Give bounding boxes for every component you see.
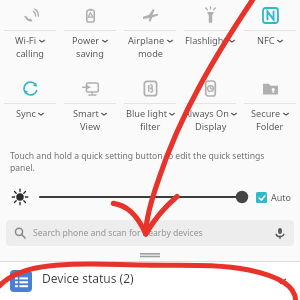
staticText: Sync [16, 107, 36, 120]
button[interactable]: Device status (2) [10, 270, 288, 292]
button[interactable]: Blue light [120, 104, 180, 138]
button[interactable]: Wi-Fi [0, 31, 60, 65]
staticText: filter [140, 120, 161, 133]
button[interactable]: Auto [256, 191, 292, 203]
button[interactable]: Airplane [120, 31, 180, 65]
button[interactable]: Secure [240, 104, 300, 138]
staticText: Folder [256, 120, 284, 133]
staticText: NFC [257, 34, 275, 47]
staticText: View [80, 120, 101, 133]
button[interactable]: Brightness slider [38, 186, 250, 208]
staticText: Touch and hold a quick setting button to… [10, 150, 286, 174]
button[interactable]: Blue light filter [120, 73, 180, 103]
button[interactable]: Brightness [10, 187, 30, 207]
staticText: Flashlight [185, 34, 227, 47]
button[interactable]: Sync [0, 104, 60, 138]
button[interactable]: Secure Folder [240, 73, 300, 103]
button[interactable]: Always On Display [180, 73, 240, 103]
button[interactable]: Airplane mode [120, 0, 180, 30]
staticText: saving [76, 47, 104, 60]
button[interactable]: Search phone and scan for nearby devices [6, 220, 294, 246]
staticText: Secure [251, 107, 281, 120]
staticText: Smart [73, 107, 99, 120]
button[interactable]: NFC [240, 31, 300, 65]
staticText: Search phone and scan for nearby devices [33, 227, 203, 239]
staticText: Blue light [126, 107, 167, 120]
staticText: calling [16, 47, 45, 60]
button[interactable]: Smart [60, 104, 120, 138]
button[interactable]: Always On [180, 104, 240, 138]
staticText: mode [138, 47, 163, 60]
button[interactable]: Flashlight [180, 0, 240, 30]
button[interactable]: Power [60, 31, 120, 65]
button[interactable]: Sync [0, 73, 60, 103]
staticText: Always On [184, 107, 229, 120]
staticText: Wi-Fi [15, 34, 37, 47]
staticText: Device status (2) [42, 270, 134, 286]
staticText: Display [195, 120, 227, 133]
staticText: Airplane [128, 34, 165, 47]
button[interactable]: Flashlight [180, 31, 240, 65]
button[interactable]: Power saving [60, 0, 120, 30]
button[interactable]: NFC [240, 0, 300, 30]
staticText: Auto [271, 191, 292, 203]
staticText: Power [72, 34, 100, 47]
button[interactable]: Smart View [60, 73, 120, 103]
button[interactable]: Wi-Fi calling [0, 0, 60, 30]
